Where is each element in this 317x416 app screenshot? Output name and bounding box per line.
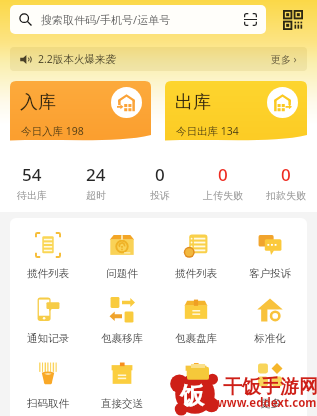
staticText: www.eddext.com bbox=[217, 395, 317, 411]
staticText: 入库 bbox=[20, 91, 56, 114]
staticText: 客户投诉 bbox=[249, 267, 291, 280]
button[interactable]: 揽件列表 bbox=[159, 232, 233, 280]
button[interactable]: 通知记录 bbox=[10, 297, 85, 345]
staticText: 问题件 bbox=[106, 267, 138, 280]
staticText: 包裹 bbox=[186, 397, 207, 410]
staticText: 超时 bbox=[86, 189, 106, 202]
staticText: 54 bbox=[22, 163, 42, 186]
staticText: 今日出库 134 bbox=[176, 124, 239, 138]
staticText: 干饭手游网 bbox=[223, 375, 317, 399]
button[interactable]: 问题件 bbox=[85, 232, 159, 280]
button[interactable]: 包裹盘库 bbox=[159, 297, 233, 345]
staticText: 上传失败 bbox=[203, 189, 243, 202]
staticText: 包裹盘库 bbox=[175, 332, 217, 345]
staticText: 待出库 bbox=[17, 189, 47, 202]
staticText: 通知记录 bbox=[27, 332, 69, 345]
button[interactable]: 扫码取件 bbox=[10, 362, 85, 410]
button[interactable]: 揽件列表 bbox=[10, 232, 85, 280]
staticText: 出库 bbox=[175, 91, 211, 114]
staticText: 揽件列表 bbox=[175, 267, 217, 280]
staticText: 直接交送 bbox=[101, 397, 143, 410]
staticText: 搜索取件码/手机号/运单号 bbox=[41, 12, 171, 27]
staticText: 标准化 bbox=[254, 332, 286, 345]
button[interactable]: 直接交送 bbox=[85, 362, 159, 410]
staticText: 0 bbox=[281, 163, 291, 186]
staticText: 饭 bbox=[180, 381, 204, 411]
button[interactable]: QR code bbox=[274, 5, 312, 34]
button[interactable]: 包裹 bbox=[159, 362, 233, 410]
staticText: 投诉 bbox=[150, 189, 170, 202]
button[interactable]: 标准化 bbox=[233, 297, 307, 345]
staticText: 扣款失败 bbox=[266, 189, 306, 202]
staticText: 更多 › bbox=[271, 52, 297, 66]
staticText: 包裹移库 bbox=[101, 332, 143, 345]
staticText: 0 bbox=[155, 163, 165, 186]
button[interactable]: 54 bbox=[0, 163, 64, 202]
staticText: 2.2版本火爆来袭 bbox=[38, 52, 116, 66]
staticText: 扫码取件 bbox=[27, 397, 69, 410]
button[interactable]: 入库 bbox=[10, 81, 151, 142]
staticText: 揽件列表 bbox=[27, 267, 69, 280]
button[interactable]: 出库 bbox=[165, 81, 307, 142]
staticText: 0 bbox=[218, 163, 228, 186]
staticText: 今日入库 198 bbox=[21, 124, 84, 138]
button[interactable]: 搜索取件码/手机号/运单号 bbox=[10, 5, 266, 34]
button[interactable]: 0 bbox=[254, 163, 317, 202]
button[interactable]: 0 bbox=[128, 163, 191, 202]
button[interactable]: 2.2版本火爆来袭 bbox=[10, 47, 307, 71]
button[interactable]: 更多 bbox=[233, 362, 307, 410]
staticText: 24 bbox=[86, 163, 106, 186]
staticText: 更多 bbox=[260, 397, 281, 410]
other: Scan barcode bbox=[244, 13, 257, 26]
button[interactable]: 包裹移库 bbox=[85, 297, 159, 345]
button[interactable]: 0 bbox=[191, 163, 254, 202]
button[interactable]: 客户投诉 bbox=[233, 232, 307, 280]
button[interactable]: 24 bbox=[64, 163, 128, 202]
